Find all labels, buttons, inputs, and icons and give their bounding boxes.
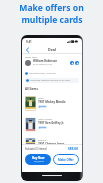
staticText: 1991 Chipper Jones [38,142,65,144]
staticText: Make offers on [19,2,84,14]
button[interactable]: Topps [25,96,79,116]
button[interactable]: Bowman [25,138,79,144]
staticText: Topps [38,97,44,100]
staticText: Deal [48,47,56,52]
button[interactable]: Call seller [75,61,79,65]
staticText: 99.7% Positive (1,204) [33,63,53,66]
staticText: Topps Chrome [38,118,53,121]
staticText: multiple cards [21,14,83,26]
staticText: $25.00 [39,105,46,108]
staticText: 1987 Mickey Mantle [38,100,66,104]
button[interactable]: Make Offer [53,154,79,165]
staticText: For $85.00 [34,160,44,163]
button[interactable]: Back [24,47,30,53]
button[interactable]: Buy Now [25,154,51,165]
staticText: Make Offer [58,158,74,162]
staticText: Buy Now [32,156,45,160]
staticText: William Robinson [33,59,58,63]
staticText: $85.00 [68,147,79,151]
staticText: 9:41 [26,40,32,44]
staticText: Seller Info [25,55,37,58]
staticText: 1987 Ken Griffey Jr. [38,121,64,125]
staticText: All Items [25,87,38,91]
staticText: Combined shipping available on all items [30,79,71,82]
staticText: $30.00 [39,126,46,129]
staticText: Bowman [38,139,47,142]
button[interactable]: Topps Chrome [25,117,79,137]
staticText: Subtotal (3 items) [25,147,47,151]
staticText: Top Rated Seller · Ships fast [29,72,56,75]
button[interactable]: Message seller [70,61,74,65]
